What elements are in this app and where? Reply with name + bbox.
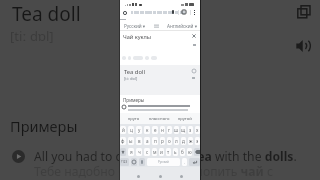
button[interactable]: б	[180, 148, 185, 156]
button[interactable]: э	[195, 137, 200, 145]
staticText: й	[122, 127, 125, 133]
button[interactable]: ц	[128, 126, 134, 134]
staticText: ц	[130, 127, 133, 133]
staticText: ?123	[121, 160, 128, 164]
button[interactable]: е	[152, 126, 158, 134]
button[interactable]: д	[181, 137, 186, 145]
staticText: с	[146, 149, 149, 155]
button[interactable]: ь	[173, 148, 178, 156]
staticText: т	[167, 149, 170, 155]
staticText: г	[168, 127, 171, 133]
button[interactable]: й	[120, 126, 126, 134]
staticText: Русский ▾	[124, 23, 146, 29]
staticText: х	[196, 127, 199, 133]
button[interactable]: ж	[188, 137, 193, 145]
button[interactable]: ш	[174, 126, 179, 134]
staticText: и	[160, 149, 163, 155]
staticText: н	[161, 127, 164, 133]
staticText: д	[182, 138, 185, 144]
button[interactable]: Voice input	[139, 158, 145, 166]
staticText: Английский ▾	[167, 23, 197, 29]
staticText: у	[138, 127, 141, 133]
staticText: Примеры	[10, 116, 78, 136]
staticText: я	[130, 149, 133, 155]
button[interactable]: з	[188, 126, 193, 134]
button[interactable]: Recents	[180, 175, 183, 178]
button[interactable]: Emoji	[131, 158, 137, 166]
button[interactable]: ы	[128, 137, 134, 145]
button[interactable]: в	[136, 137, 142, 145]
staticText: к	[146, 127, 149, 133]
staticText: крутой	[178, 116, 192, 122]
staticText: Примеры	[123, 97, 145, 103]
staticText: э	[196, 138, 199, 144]
button[interactable]: Backspace	[194, 148, 200, 156]
button[interactable]: и	[159, 148, 164, 156]
staticText: Чай куклы	[123, 33, 152, 41]
staticText: ш	[174, 127, 179, 133]
staticText: [tiː dɒl]	[10, 27, 54, 45]
button[interactable]: ч	[136, 148, 142, 156]
staticText: Tea doll	[12, 1, 81, 27]
button[interactable]: а	[144, 137, 150, 145]
button[interactable]: г	[167, 126, 172, 134]
staticText: е	[154, 127, 157, 133]
button[interactable]: р	[160, 137, 165, 145]
button[interactable]: м	[152, 148, 157, 156]
button[interactable]: н	[160, 126, 165, 134]
button[interactable]: Back	[137, 175, 140, 178]
staticText: ф	[121, 138, 125, 144]
staticText: р	[161, 138, 164, 144]
button[interactable]: Shift	[120, 148, 126, 156]
staticText: ы	[129, 138, 133, 144]
button[interactable]	[151, 56, 157, 60]
button[interactable]: ф	[120, 137, 126, 145]
staticText: п	[154, 138, 157, 144]
staticText: м	[153, 149, 157, 155]
staticText: л	[175, 138, 178, 144]
button[interactable]: ?123	[120, 158, 129, 166]
button[interactable]: Play example	[11, 149, 25, 163]
button[interactable]: о	[167, 137, 172, 145]
button[interactable]	[122, 56, 126, 60]
button[interactable]: .	[182, 158, 187, 166]
staticText: [tiː dɒl]	[124, 76, 138, 81]
button[interactable]: т	[166, 148, 171, 156]
staticText: Tea doll	[124, 68, 145, 76]
button[interactable]: у	[136, 126, 142, 134]
button[interactable]: ю	[187, 148, 192, 156]
staticText: б	[181, 149, 184, 155]
button[interactable]: к	[144, 126, 150, 134]
staticText: в	[138, 138, 141, 144]
button[interactable]: с	[144, 148, 150, 156]
staticText: ч	[138, 149, 141, 155]
button[interactable]	[128, 56, 131, 60]
staticText: о	[168, 138, 171, 144]
button[interactable]: х	[195, 126, 200, 134]
staticText: з	[189, 127, 192, 133]
button[interactable]: я	[128, 148, 134, 156]
button[interactable]: Home	[159, 175, 162, 178]
button[interactable]: Русский	[147, 158, 180, 166]
button[interactable]: л	[174, 137, 179, 145]
staticText: классного	[149, 116, 170, 122]
staticText: ж	[189, 138, 193, 144]
button[interactable]: щ	[181, 126, 186, 134]
staticText: ь	[174, 149, 177, 155]
button[interactable]: Listen	[293, 35, 315, 57]
staticText: Русский	[158, 160, 169, 164]
staticText: Тебе надобно было только попить чай с	[34, 163, 274, 180]
staticText: ю	[188, 149, 192, 155]
button[interactable]: Copy	[293, 1, 315, 23]
staticText: круто	[128, 116, 140, 122]
staticText: щ	[181, 127, 186, 133]
button[interactable]	[145, 56, 149, 60]
button[interactable]	[133, 56, 143, 60]
button[interactable]: п	[152, 137, 158, 145]
staticText: а	[146, 138, 149, 144]
button[interactable]: Enter	[189, 158, 200, 166]
staticText: All you had to do was drink tea with the…	[34, 148, 297, 165]
staticText: .	[184, 160, 185, 165]
